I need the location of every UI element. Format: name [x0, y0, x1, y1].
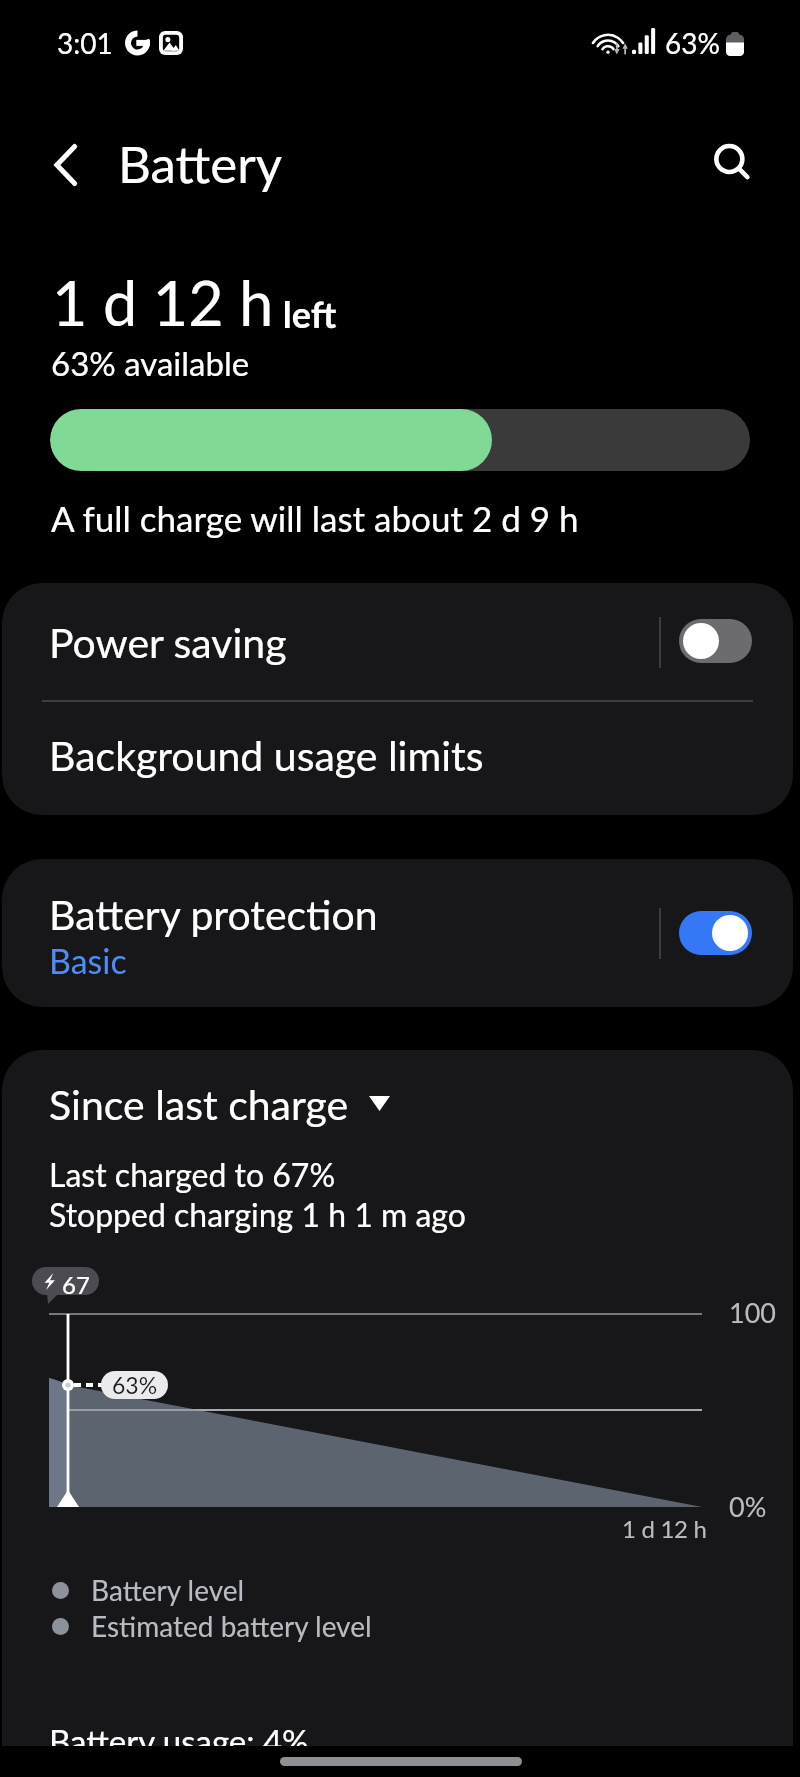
staticText: Battery level — [91, 1573, 245, 1607]
staticText: left — [274, 292, 337, 335]
button[interactable]: Battery protection — [2, 859, 793, 1007]
staticText: 63% — [112, 1371, 158, 1399]
staticText: 1 d 12 h — [622, 1514, 707, 1543]
staticText: 0% — [729, 1490, 767, 1522]
staticText: 100 — [729, 1296, 776, 1328]
staticText: Estimated battery level — [91, 1609, 372, 1643]
staticText: 63% — [665, 26, 720, 60]
button[interactable]: Back — [24, 123, 108, 207]
staticText: Stopped charging 1 h 1 m ago — [49, 1195, 466, 1233]
button[interactable]: Since last charge — [49, 1080, 390, 1129]
staticText: 67 — [62, 1270, 90, 1299]
button[interactable]: Power saving — [2, 583, 793, 700]
button[interactable]: Turn off — [679, 911, 752, 955]
staticText: Basic — [49, 940, 127, 981]
staticText: 1 d 12 h — [52, 266, 274, 339]
staticText: A full charge will last about 2 d 9 h — [51, 497, 579, 539]
staticText: Background usage limits — [49, 731, 484, 780]
staticText: 3:01 — [57, 26, 113, 60]
staticText: Battery usage: 4% — [49, 1721, 309, 1761]
staticText: Power saving — [49, 618, 287, 667]
button[interactable]: Search — [691, 122, 773, 204]
button[interactable]: Background usage limits — [2, 702, 793, 815]
button[interactable]: Turn on — [679, 619, 752, 663]
staticText: Last charged to 67% — [49, 1155, 336, 1193]
staticText: 63% available — [51, 343, 250, 383]
staticText: Since last charge — [49, 1080, 349, 1129]
staticText: Battery protection — [49, 890, 378, 939]
staticText: Battery — [118, 133, 283, 194]
